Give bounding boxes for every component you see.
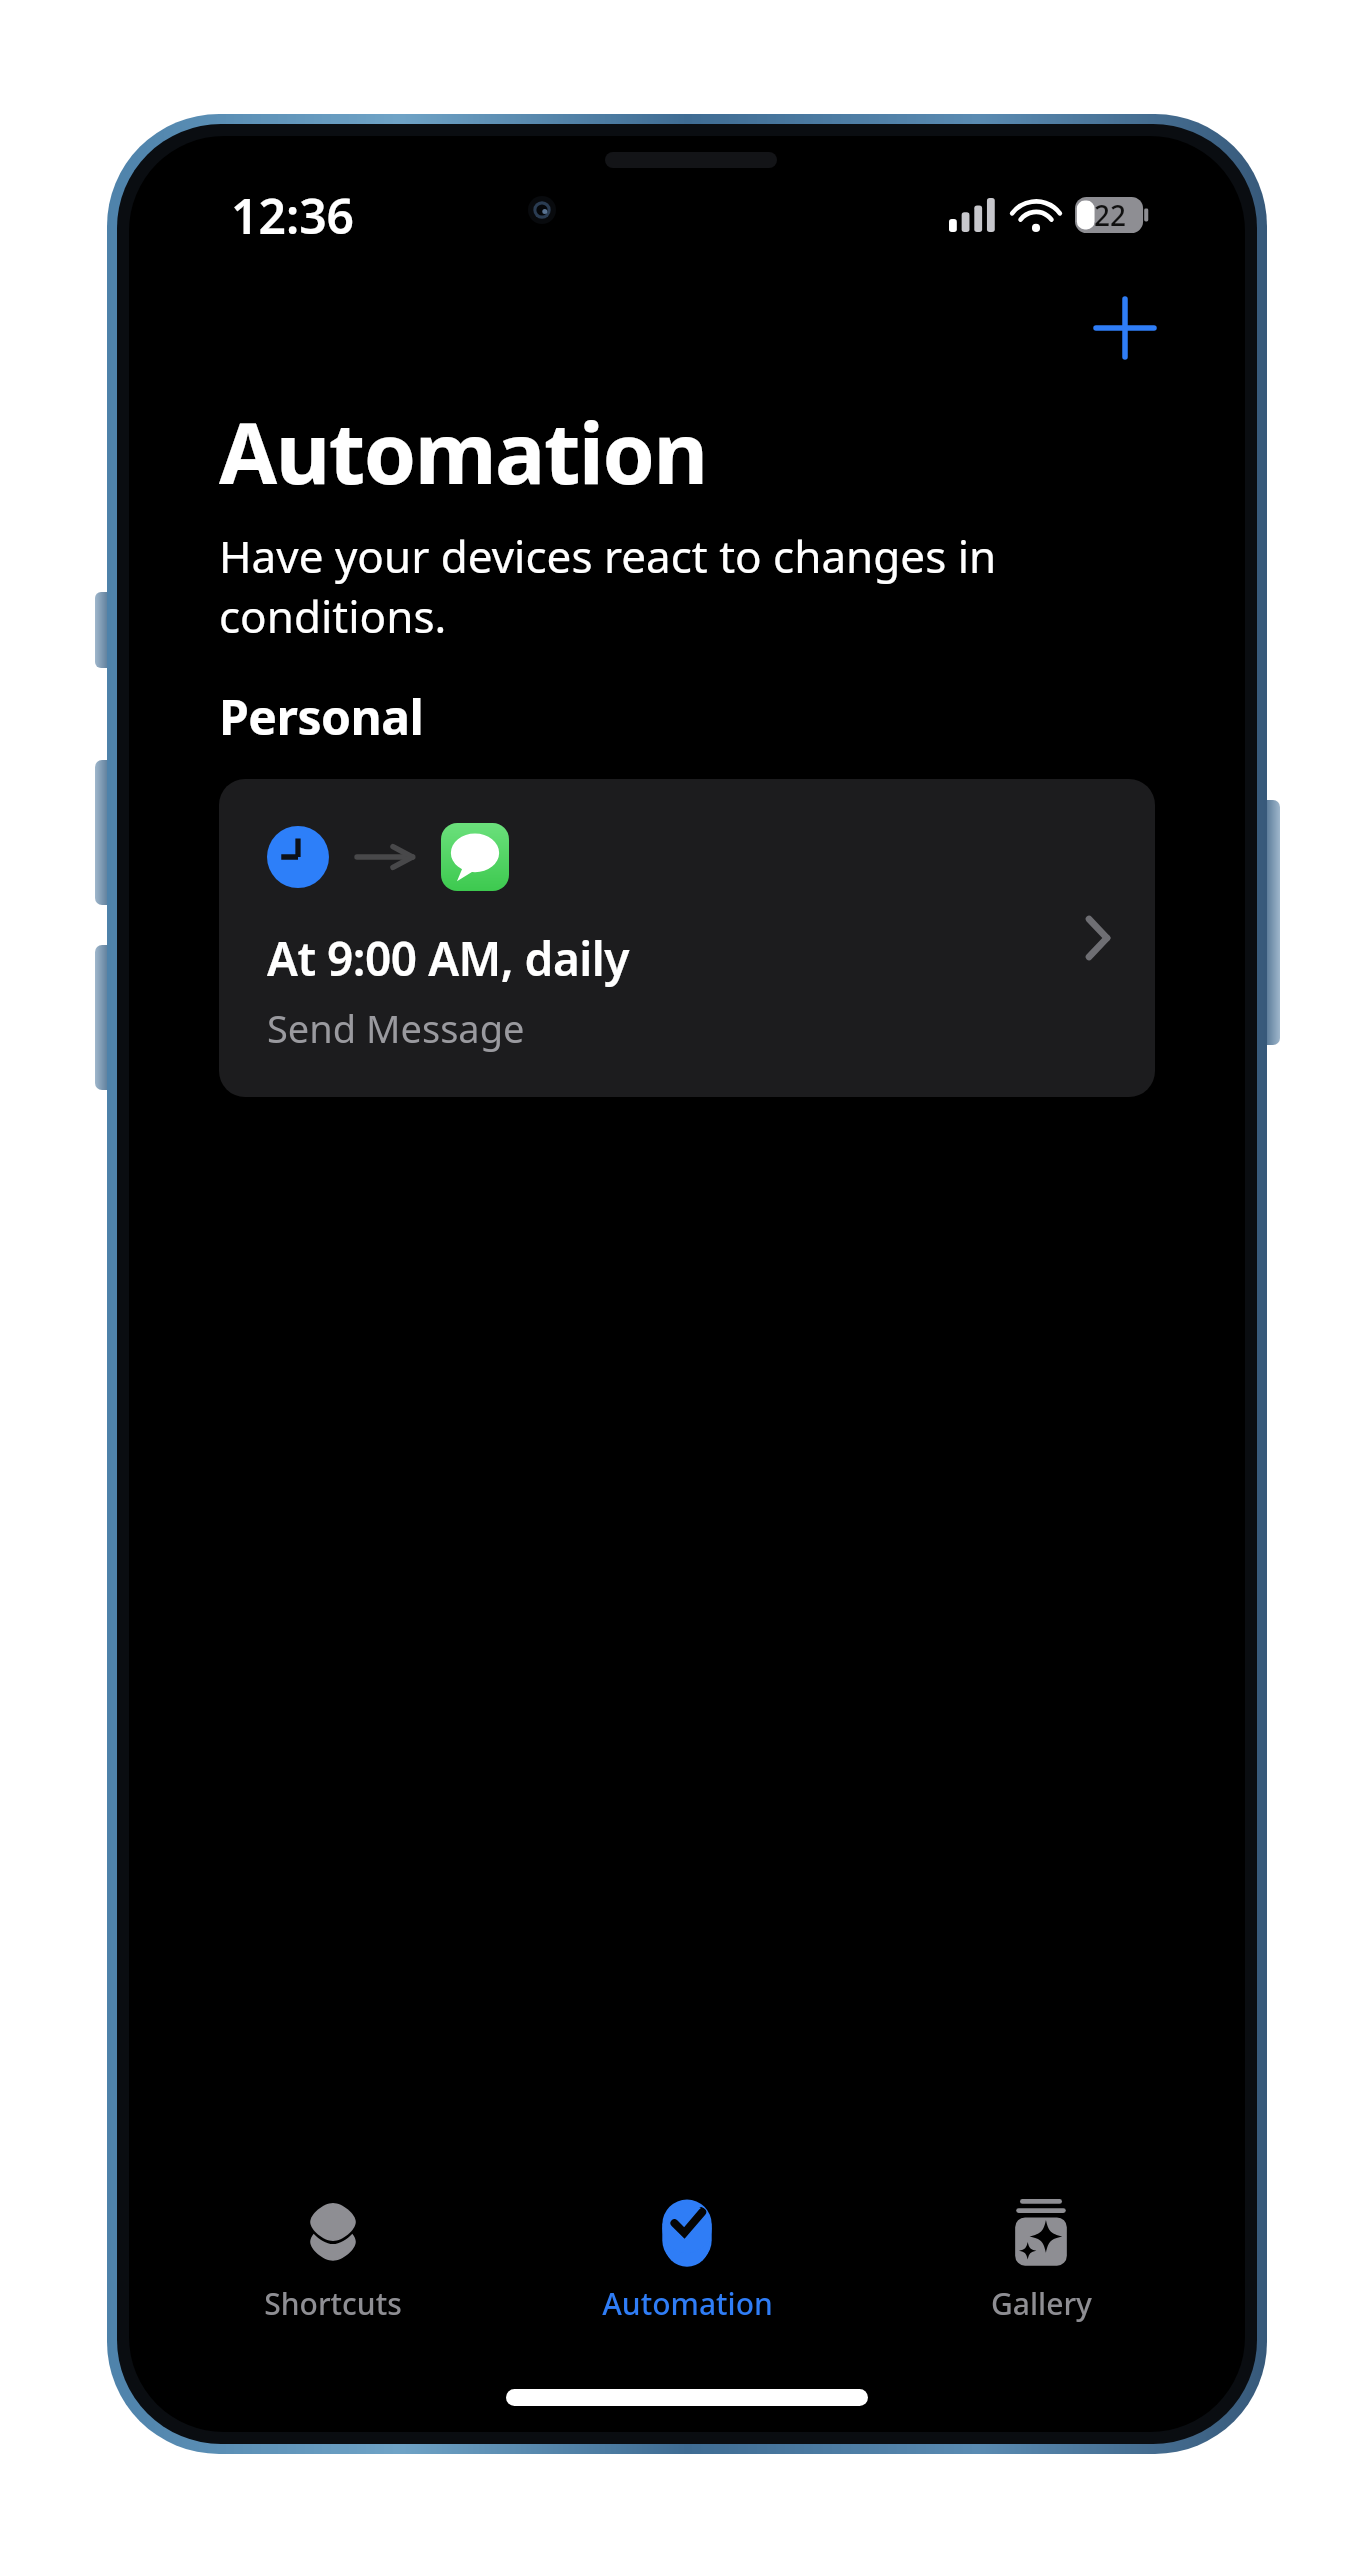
staticText: Personal xyxy=(219,684,424,749)
staticText: Shortcuts xyxy=(264,2283,402,2324)
staticText: Send Message xyxy=(267,1002,525,1054)
button[interactable]: Gallery xyxy=(891,2177,1191,2324)
button[interactable]: At 9:00 AM, daily xyxy=(219,779,1155,1097)
staticText: Gallery xyxy=(991,2283,1092,2324)
button[interactable]: Shortcuts xyxy=(183,2177,483,2324)
button[interactable]: Automation xyxy=(537,2177,837,2324)
staticText: At 9:00 AM, daily xyxy=(267,927,630,990)
staticText: Automation xyxy=(602,2283,773,2324)
staticText: 12:36 xyxy=(231,183,355,248)
staticText: 22 xyxy=(1094,196,1127,234)
staticText: Automation xyxy=(219,394,707,508)
staticText: Have your devices react to changes in co… xyxy=(219,526,1155,646)
button[interactable]: Add automation xyxy=(1077,280,1173,376)
